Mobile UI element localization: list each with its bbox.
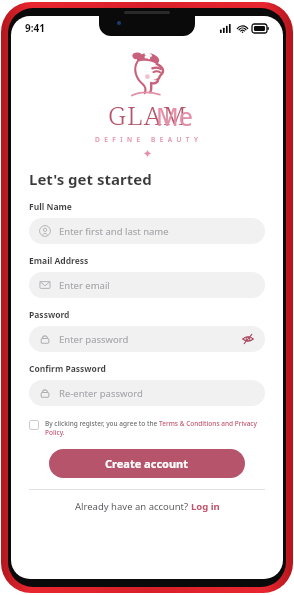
staticText: Log in	[191, 500, 220, 513]
staticText: Me	[156, 99, 193, 133]
button[interactable]: Re-enter password	[29, 380, 265, 406]
staticText: Email Address	[29, 255, 89, 267]
staticText: Already have an account?	[75, 500, 191, 513]
staticText: D E F I N E B E A U T Y	[95, 135, 200, 144]
staticText: Confirm Password	[29, 363, 106, 375]
button[interactable]: By clicking register, you agree to the T…	[29, 419, 265, 437]
staticText: Full Name	[29, 201, 72, 213]
staticText: Enter password	[59, 333, 129, 346]
staticText: Re-enter password	[59, 387, 143, 400]
staticText: GLAM	[108, 97, 188, 132]
button[interactable]: Log in	[191, 500, 220, 513]
staticText: Create account	[105, 456, 189, 471]
button[interactable]: Enter password	[29, 326, 265, 352]
staticText: Let's get started	[29, 169, 152, 189]
staticText: 9:41	[25, 21, 45, 35]
button[interactable]: Enter first and last name	[29, 218, 265, 244]
button[interactable]: Create account	[49, 449, 245, 478]
staticText: Enter email	[59, 279, 110, 292]
staticText: By clicking register, you agree to the T…	[45, 419, 265, 437]
staticText: Enter first and last name	[59, 225, 169, 238]
button[interactable]: Enter email	[29, 272, 265, 298]
staticText: Password	[29, 309, 70, 321]
button[interactable]: Toggle password visibility	[241, 332, 255, 346]
